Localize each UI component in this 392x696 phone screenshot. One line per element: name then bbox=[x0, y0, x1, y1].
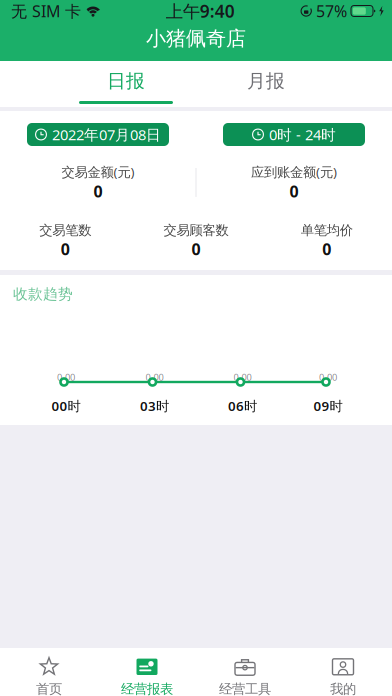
staticText: 0时 - 24时 bbox=[269, 125, 336, 144]
staticText: 我的 bbox=[330, 681, 356, 696]
button[interactable]: 经营报表 bbox=[98, 648, 196, 696]
staticText: 月报 bbox=[247, 69, 285, 92]
staticText: 经营报表 bbox=[121, 681, 173, 696]
staticText: 0 bbox=[289, 181, 298, 202]
staticText: 交易笔数 bbox=[39, 222, 91, 238]
staticText: 首页 bbox=[36, 681, 62, 696]
staticText: 2022年07月08日 bbox=[52, 125, 161, 144]
staticText: 0.00 bbox=[319, 371, 337, 383]
staticText: 57% bbox=[316, 0, 347, 22]
button[interactable]: 经营工具 bbox=[196, 648, 294, 696]
staticText: 0.00 bbox=[145, 371, 163, 383]
staticText: 日报 bbox=[107, 69, 145, 92]
staticText: 应到账金额(元) bbox=[251, 163, 337, 181]
staticText: 00时 bbox=[51, 397, 80, 415]
staticText: 小猪佩奇店 bbox=[146, 26, 246, 51]
button[interactable]: 我的 bbox=[294, 648, 392, 696]
button[interactable]: 0时 - 24时 bbox=[223, 123, 365, 146]
button[interactable]: 月报 bbox=[196, 61, 336, 107]
staticText: 06时 bbox=[228, 397, 257, 415]
staticText: 无 SIM 卡 bbox=[11, 0, 81, 22]
staticText: 交易金额(元) bbox=[61, 163, 134, 181]
button[interactable]: 2022年07月08日 bbox=[27, 123, 169, 146]
staticText: 单笔均价 bbox=[301, 222, 353, 238]
button[interactable]: 首页 bbox=[0, 648, 98, 696]
staticText: 收款趋势 bbox=[13, 285, 73, 303]
staticText: 上午9:40 bbox=[166, 0, 235, 22]
button[interactable]: 日报 bbox=[56, 61, 196, 107]
staticText: 交易顾客数 bbox=[163, 222, 228, 238]
staticText: 03时 bbox=[140, 397, 169, 415]
staticText: 0 bbox=[191, 238, 200, 260]
staticText: 经营工具 bbox=[219, 681, 271, 696]
staticText: 0 bbox=[322, 238, 331, 260]
staticText: 0 bbox=[93, 181, 102, 202]
staticText: 0 bbox=[61, 238, 70, 260]
staticText: 0.00 bbox=[233, 371, 251, 383]
staticText: 09时 bbox=[313, 397, 342, 415]
staticText: 0.00 bbox=[57, 371, 75, 383]
